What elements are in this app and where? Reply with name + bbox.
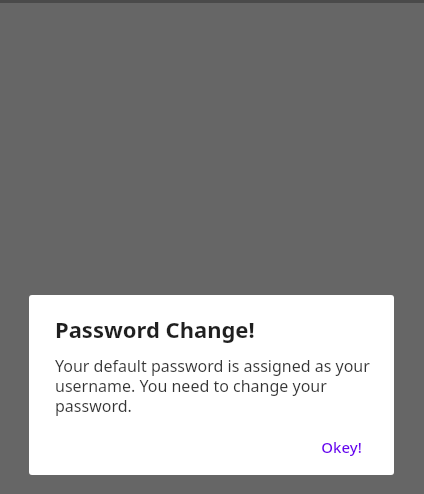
staticText: Password Change! [55, 314, 255, 344]
button[interactable]: Okey! [313, 431, 370, 463]
staticText: Okey! [321, 437, 362, 457]
staticText: Your default password is assigned as you… [55, 355, 370, 416]
